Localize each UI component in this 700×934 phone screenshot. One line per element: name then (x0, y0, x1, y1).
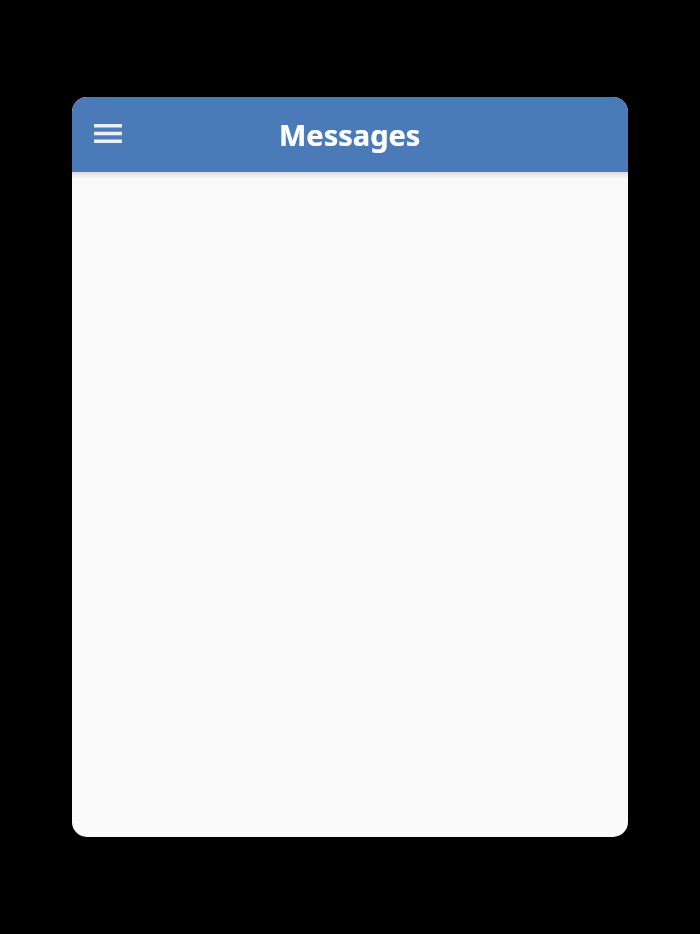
button[interactable] (86, 111, 130, 155)
staticText: Messages (279, 115, 421, 154)
